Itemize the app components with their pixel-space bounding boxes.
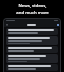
button[interactable] [6, 28, 58, 35]
button[interactable] [6, 54, 58, 63]
button[interactable] [6, 64, 58, 71]
staticText: and much more [16, 9, 49, 15]
button[interactable]: Menu [5, 23, 8, 26]
staticText: News, videos, [18, 2, 47, 8]
button[interactable] [6, 46, 58, 53]
button[interactable] [6, 36, 58, 45]
button[interactable]: Account [56, 23, 59, 26]
